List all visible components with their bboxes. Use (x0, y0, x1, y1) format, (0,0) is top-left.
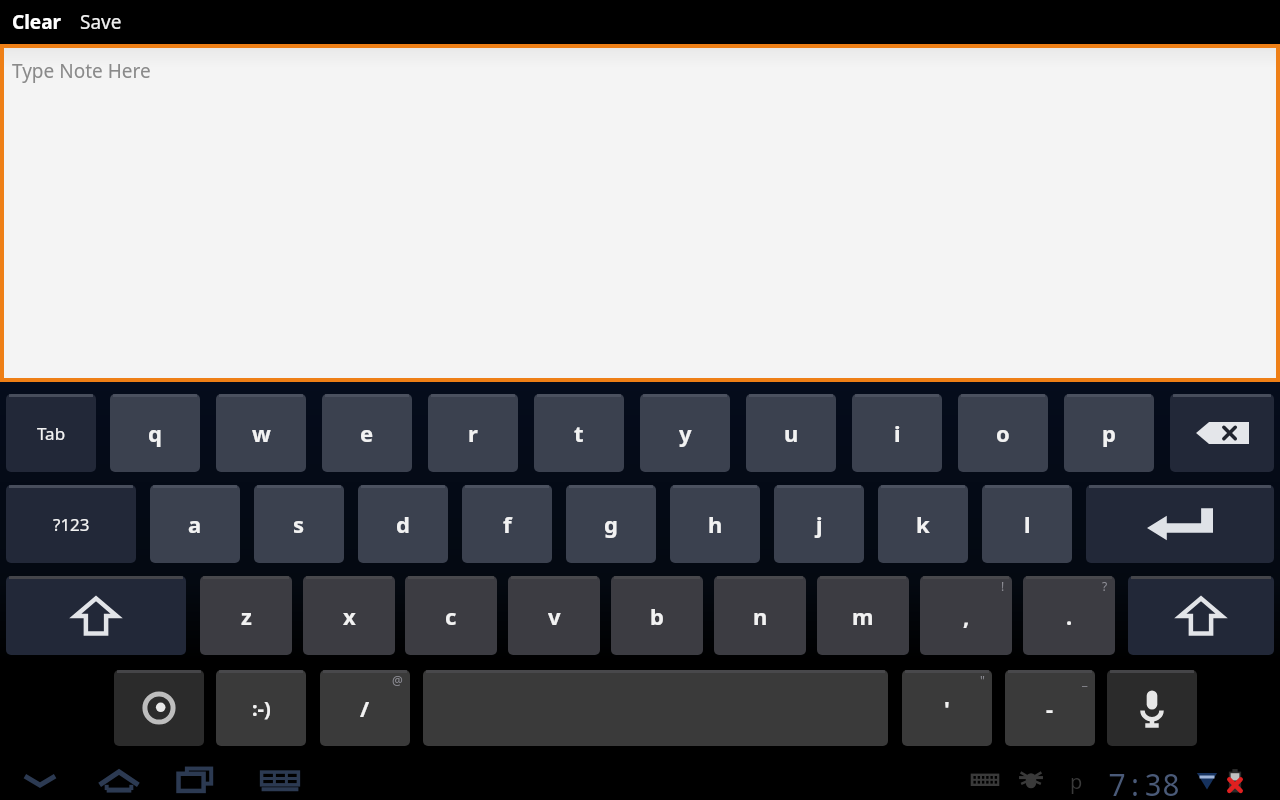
button[interactable]: , (920, 576, 1012, 655)
staticText: ?123 (53, 513, 90, 536)
staticText: - (1046, 693, 1054, 723)
button[interactable]: r (428, 394, 518, 472)
staticText: q (148, 418, 162, 448)
button[interactable]: :-) (216, 670, 306, 746)
staticText: o (996, 418, 1010, 448)
staticText: @ (392, 672, 403, 688)
staticText: ? (1102, 578, 1108, 594)
staticText: . (1066, 601, 1073, 631)
button[interactable]: y (640, 394, 730, 472)
button[interactable]: o (958, 394, 1048, 472)
staticText: v (548, 601, 561, 631)
staticText: n (753, 601, 768, 631)
staticText: / (360, 693, 370, 723)
button[interactable]: ?123 (6, 485, 136, 563)
staticText: b (650, 601, 664, 631)
button[interactable]: j (774, 485, 864, 563)
button[interactable]: z (200, 576, 292, 655)
button[interactable]: t (534, 394, 624, 472)
button[interactable]: Backspace (1170, 394, 1274, 472)
staticText: :-) (252, 695, 271, 722)
button[interactable]: Save (72, 5, 130, 39)
staticText: 7:38 (1108, 764, 1180, 800)
staticText: h (708, 509, 723, 539)
staticText: ! (1001, 578, 1005, 594)
button[interactable]: ' (902, 670, 992, 746)
button[interactable]: . (1023, 576, 1115, 655)
staticText: Clear (12, 9, 62, 35)
button[interactable]: Type Note Here (4, 48, 1276, 378)
button[interactable]: Shift (1128, 576, 1274, 655)
button[interactable]: Keyboard (252, 760, 308, 800)
button[interactable]: / (320, 670, 410, 746)
staticText: j (816, 509, 823, 539)
button[interactable]: n (714, 576, 806, 655)
button[interactable]: - (1005, 670, 1095, 746)
button[interactable]: c (405, 576, 497, 655)
staticText: f (503, 509, 512, 539)
button[interactable]: d (358, 485, 448, 563)
staticText: u (784, 418, 799, 448)
staticText: k (916, 509, 930, 539)
button[interactable]: u (746, 394, 836, 472)
staticText: c (445, 601, 457, 631)
staticText: d (396, 509, 410, 539)
button[interactable]: b (611, 576, 703, 655)
button[interactable]: Voice input (1107, 670, 1197, 746)
button[interactable]: Home (90, 760, 148, 800)
button[interactable]: Enter (1086, 485, 1274, 563)
button[interactable]: g (566, 485, 656, 563)
button[interactable]: f (462, 485, 552, 563)
button[interactable]: q (110, 394, 200, 472)
staticText: t (574, 418, 584, 448)
button[interactable]: v (508, 576, 600, 655)
button[interactable]: Clear (0, 5, 72, 39)
button[interactable]: w (216, 394, 306, 472)
staticText: Save (80, 9, 122, 35)
staticText: a (188, 509, 202, 539)
staticText: y (679, 418, 692, 448)
button[interactable]: Recent apps (168, 760, 224, 800)
staticText: z (241, 601, 252, 631)
staticText: w (252, 418, 271, 448)
button[interactable]: m (817, 576, 909, 655)
button[interactable]: p (1064, 394, 1154, 472)
staticText: l (1024, 509, 1031, 539)
staticText: " (980, 672, 985, 688)
staticText: p (1102, 418, 1116, 448)
button[interactable]: e (322, 394, 412, 472)
button[interactable]: i (852, 394, 942, 472)
staticText: Type Note Here (12, 58, 151, 84)
staticText: _ (1082, 672, 1088, 688)
staticText: , (963, 601, 970, 631)
button[interactable]: x (303, 576, 395, 655)
button[interactable]: h (670, 485, 760, 563)
button[interactable]: l (982, 485, 1072, 563)
button[interactable]: s (254, 485, 344, 563)
button[interactable]: Tab (6, 394, 96, 472)
staticText: ' (944, 693, 950, 723)
button[interactable]: Hide keyboard (12, 760, 68, 800)
staticText: e (360, 418, 374, 448)
button[interactable]: Space (423, 670, 888, 746)
staticText: i (894, 418, 901, 448)
staticText: x (343, 601, 356, 631)
staticText: g (604, 509, 618, 539)
button[interactable]: Shift (6, 576, 186, 655)
button[interactable]: Input settings (114, 670, 204, 746)
button[interactable]: k (878, 485, 968, 563)
staticText: p (1070, 768, 1083, 795)
staticText: r (468, 418, 478, 448)
button[interactable]: a (150, 485, 240, 563)
staticText: s (293, 509, 305, 539)
staticText: m (852, 601, 874, 631)
staticText: Tab (37, 422, 66, 445)
